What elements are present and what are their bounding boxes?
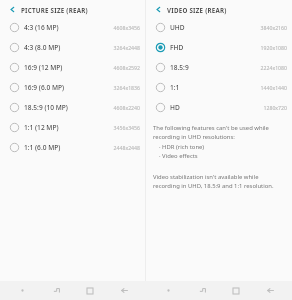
staticText: 1440x1440 xyxy=(260,84,287,91)
button[interactable]: 1:1 (12 MP) xyxy=(3,117,143,137)
staticText: 4608x3456 xyxy=(113,24,140,31)
button[interactable]: Back xyxy=(149,2,167,17)
button[interactable]: 1:1 xyxy=(149,77,290,97)
staticText: FHD xyxy=(170,43,260,52)
staticText: 1920x1080 xyxy=(260,44,287,51)
staticText: Video stabilization isn't available whil… xyxy=(153,173,286,189)
staticText: 3840x2160 xyxy=(260,24,287,31)
button[interactable]: 16:9 (12 MP) xyxy=(3,57,143,77)
staticText: 2224x1080 xyxy=(260,64,287,71)
staticText: 2448x2448 xyxy=(113,144,140,151)
staticText: 18.5:9 (10 MP) xyxy=(24,103,113,112)
button[interactable]: Menu xyxy=(10,281,34,300)
button[interactable]: 4:3 (8.0 MP) xyxy=(3,37,143,57)
staticText: 16:9 (6.0 MP) xyxy=(24,83,113,92)
button[interactable]: 16:9 (6.0 MP) xyxy=(3,77,143,97)
staticText: 4:3 (16 MP) xyxy=(24,23,113,32)
staticText: · Video effects xyxy=(159,152,198,160)
staticText: The following features can't be used whi… xyxy=(153,124,286,140)
button[interactable]: Recent apps xyxy=(190,281,214,300)
staticText: VIDEO SIZE (REAR) xyxy=(167,6,227,14)
button[interactable]: Back xyxy=(258,281,282,300)
button[interactable]: UHD xyxy=(149,17,290,37)
button[interactable]: Back xyxy=(3,2,21,17)
staticText: 16:9 (12 MP) xyxy=(24,63,113,72)
staticText: 3264x1836 xyxy=(113,84,140,91)
staticText: 18.5:9 xyxy=(170,63,260,72)
staticText: UHD xyxy=(170,23,260,32)
staticText: 1:1 (12 MP) xyxy=(24,123,113,132)
button[interactable]: Home xyxy=(78,281,102,300)
button[interactable]: FHD xyxy=(149,37,290,57)
staticText: 1280x720 xyxy=(263,104,287,111)
button[interactable]: Home xyxy=(224,281,248,300)
staticText: 4:3 (8.0 MP) xyxy=(24,43,113,52)
staticText: 1:1 xyxy=(170,83,260,92)
button[interactable]: Back xyxy=(112,281,136,300)
staticText: · HDR (rich tone) xyxy=(159,143,205,151)
staticText: 1:1 (6.0 MP) xyxy=(24,143,113,152)
button[interactable]: 18.5:9 xyxy=(149,57,290,77)
button[interactable]: 4:3 (16 MP) xyxy=(3,17,143,37)
button[interactable]: Recent apps xyxy=(44,281,68,300)
staticText: HD xyxy=(170,103,263,112)
staticText: 4608x2592 xyxy=(113,64,140,71)
button[interactable]: Menu xyxy=(156,281,180,300)
staticText: 3456x3456 xyxy=(113,124,140,131)
staticText: 3264x2448 xyxy=(113,44,140,51)
staticText: 4608x2240 xyxy=(113,104,140,111)
staticText: PICTURE SIZE (REAR) xyxy=(21,6,88,14)
button[interactable]: 18.5:9 (10 MP) xyxy=(3,97,143,117)
button[interactable]: HD xyxy=(149,97,290,117)
button[interactable]: 1:1 (6.0 MP) xyxy=(3,137,143,157)
